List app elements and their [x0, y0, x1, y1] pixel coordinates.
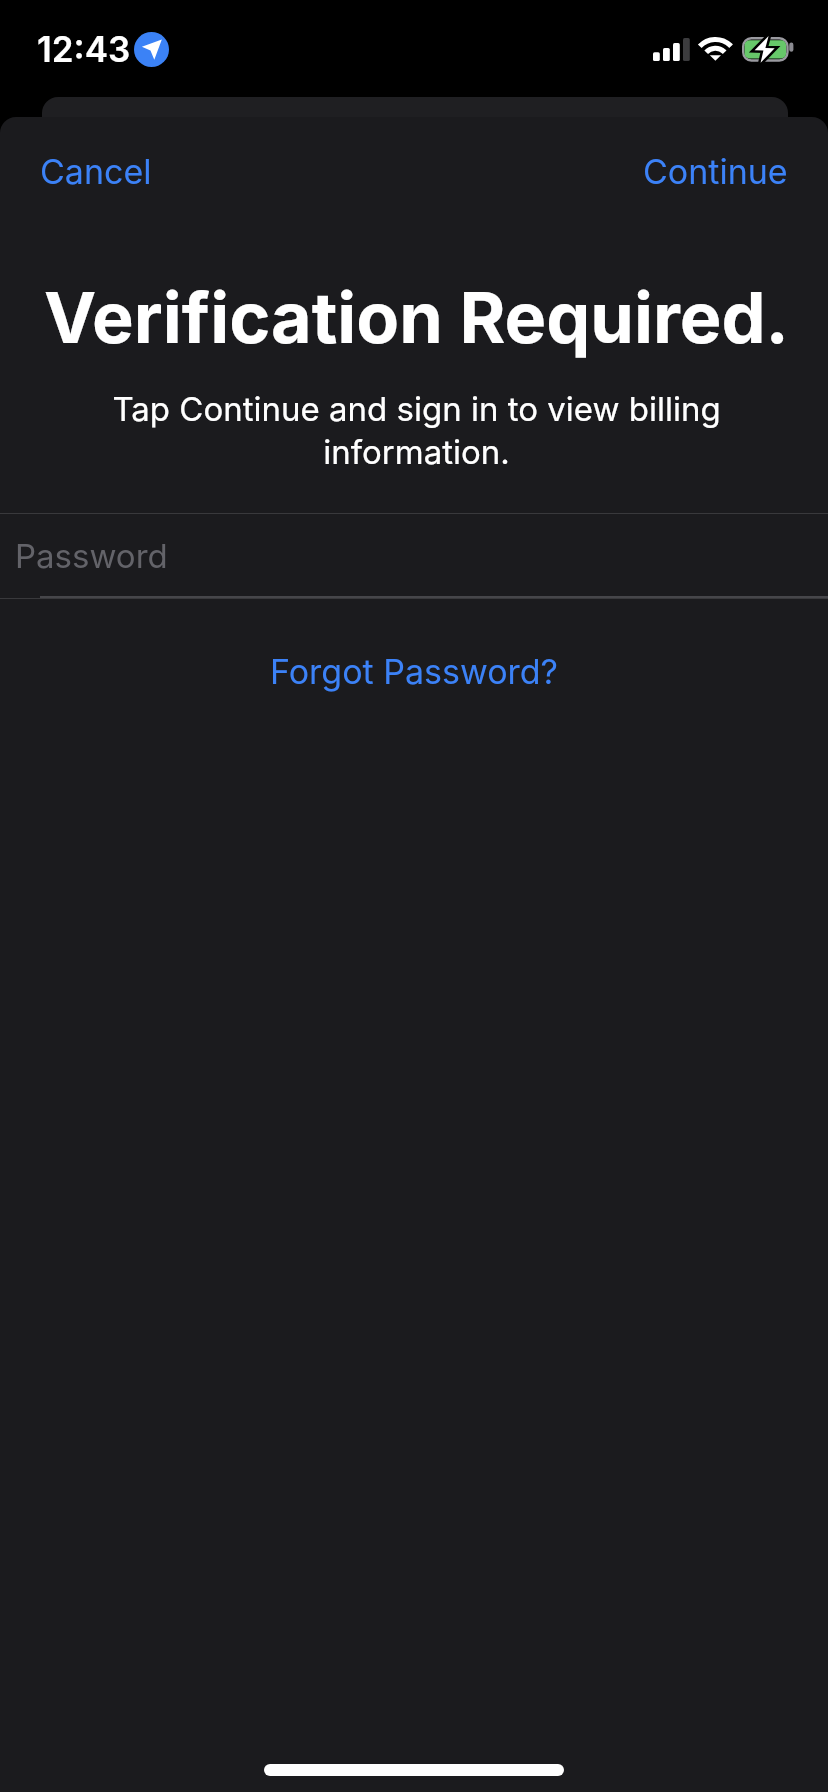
- other: Location in use: [134, 32, 169, 67]
- staticText: 12:43: [37, 28, 131, 70]
- button[interactable]: Cancel: [0, 133, 192, 210]
- staticText: Forgot Password?: [270, 651, 559, 692]
- staticText: Tap Continue and sign in to view billing…: [95, 389, 738, 472]
- staticText: Cancel: [40, 151, 152, 192]
- staticText: Password: [15, 536, 168, 576]
- staticText: Verification Required.: [29, 275, 804, 360]
- button[interactable]: Forgot Password?: [240, 641, 589, 702]
- staticText: Continue: [643, 151, 788, 192]
- button[interactable]: Continue: [603, 133, 828, 210]
- button[interactable]: Password field: [0, 514, 828, 598]
